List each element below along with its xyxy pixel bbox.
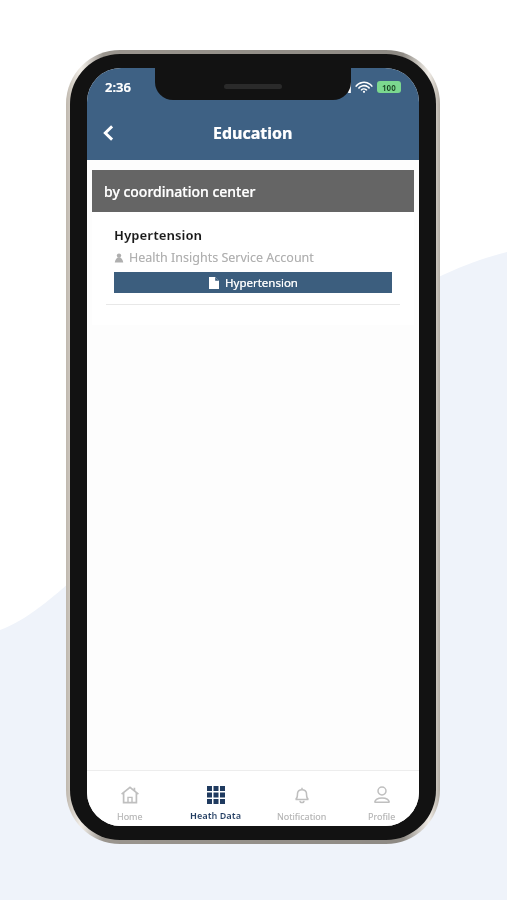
button[interactable]: Heath Data bbox=[173, 770, 259, 826]
staticText: by coordination center bbox=[104, 182, 256, 201]
button[interactable]: by coordination center bbox=[92, 170, 414, 212]
staticText: Hypertension bbox=[225, 275, 298, 291]
button[interactable]: Profile bbox=[345, 770, 419, 826]
button[interactable]: Back bbox=[87, 111, 131, 155]
staticText: 100 bbox=[382, 82, 396, 93]
button[interactable]: Home bbox=[87, 770, 173, 826]
staticText: Notification bbox=[277, 810, 327, 822]
button[interactable]: Hypertension bbox=[114, 272, 392, 293]
staticText: Health Insights Service Account bbox=[129, 249, 314, 266]
staticText: Heath Data bbox=[190, 809, 242, 821]
staticText: Hypertension bbox=[114, 226, 202, 244]
button[interactable]: Notification bbox=[259, 770, 345, 826]
staticText: Profile bbox=[368, 810, 396, 822]
staticText: Education bbox=[213, 122, 293, 144]
staticText: Home bbox=[117, 810, 143, 822]
staticText: 2:36 bbox=[105, 78, 131, 96]
